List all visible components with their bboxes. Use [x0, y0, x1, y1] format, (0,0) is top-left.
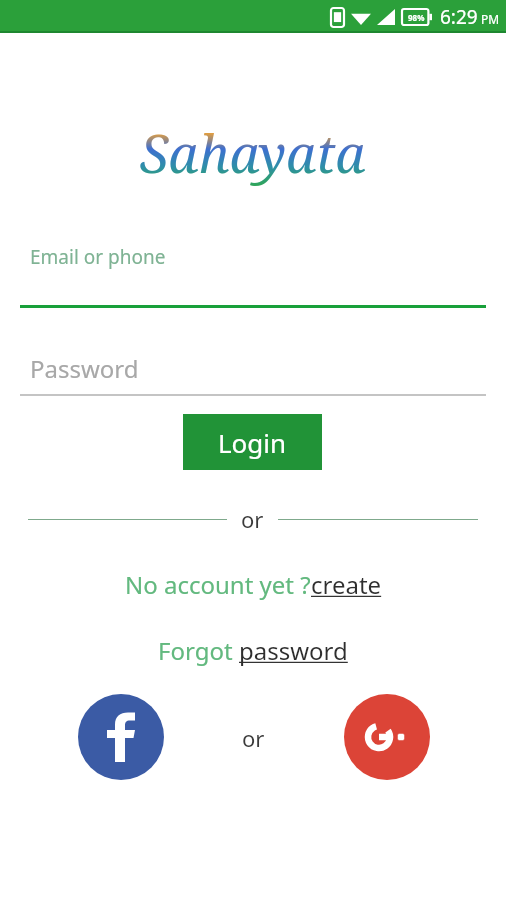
button[interactable]: Login	[183, 414, 322, 470]
staticText: Password	[30, 352, 139, 385]
staticText: 6:29	[440, 4, 478, 30]
staticText: Email or phone	[30, 244, 166, 270]
staticText: Forgot	[158, 634, 239, 667]
staticText: create	[311, 568, 382, 601]
staticText: No account yet ?	[125, 568, 311, 601]
button[interactable]: Password	[20, 352, 486, 396]
staticText: Login	[218, 425, 287, 460]
button[interactable]: Sign in with Google Plus	[344, 694, 430, 780]
button[interactable]: Forgot	[0, 628, 506, 672]
staticText: password	[239, 634, 348, 667]
button[interactable]: Sign in with Facebook	[78, 694, 164, 780]
staticText: or	[241, 504, 264, 534]
staticText: or	[242, 723, 265, 753]
staticText: 98%	[408, 12, 425, 23]
button[interactable]: No account yet ?	[0, 562, 506, 606]
staticText: PM	[481, 11, 500, 27]
staticText: Sahayata	[140, 117, 366, 188]
button[interactable]: Email or phone	[20, 232, 486, 312]
